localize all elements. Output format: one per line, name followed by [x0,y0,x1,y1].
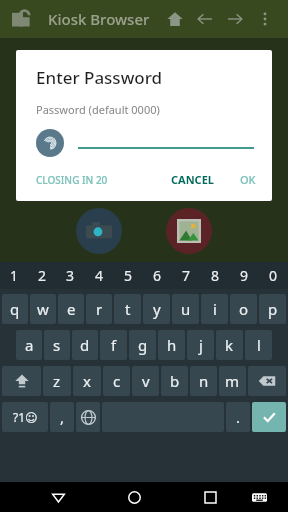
staticText: o [239,299,249,319]
button[interactable]: h [158,330,185,360]
staticText: 6 [153,266,162,285]
staticText: l [257,335,261,355]
button[interactable]: o [230,294,257,324]
button[interactable]: Forward [220,4,250,34]
staticText: 8 [211,266,220,285]
button[interactable]: 2 [28,262,56,289]
button[interactable]: Home [160,4,190,34]
staticText: 9 [240,266,249,285]
button[interactable]: q [2,294,28,324]
button[interactable]: 5 [114,262,143,289]
staticText: k [225,335,234,355]
button[interactable]: 7 [172,262,201,289]
button[interactable]: . [226,402,250,432]
staticText: y [153,299,161,319]
button[interactable]: Shift [2,366,41,396]
button[interactable]: s [44,330,70,360]
button[interactable]: , [50,402,74,432]
staticText: h [167,335,177,355]
button[interactable]: t [114,294,141,324]
staticText: t [125,299,131,319]
button[interactable]: 9 [230,262,259,289]
staticText: j [199,335,203,355]
button[interactable]: e [58,294,84,324]
button[interactable]: Kiosk lock [8,4,38,34]
staticText: d [80,335,90,355]
button[interactable]: r [86,294,112,324]
button[interactable]: n [190,366,217,396]
button[interactable]: Keyboard [244,482,274,512]
button[interactable]: b [161,366,188,396]
staticText: v [142,371,150,391]
button[interactable]: c [103,366,130,396]
button[interactable]: d [72,330,98,360]
staticText: Password (default 0000) [36,102,160,117]
button[interactable]: m [219,366,246,396]
staticText: z [53,371,61,391]
staticText: q [10,299,20,319]
button[interactable]: Recents [195,482,225,512]
staticText: b [170,371,180,391]
button[interactable]: j [187,330,214,360]
button[interactable]: Language [76,402,100,432]
staticText: 1 [10,266,19,285]
button[interactable]: g [129,330,156,360]
staticText: w [37,299,49,319]
staticText: . [236,407,241,427]
button[interactable]: 8 [201,262,230,289]
button[interactable]: Back [43,482,73,512]
button[interactable]: 6 [143,262,172,289]
staticText: r [96,299,103,319]
button[interactable]: l [245,330,272,360]
button[interactable]: Home [119,482,149,512]
button[interactable]: CLOSING IN 20 [36,173,108,187]
button[interactable]: CANCEL [171,172,214,187]
staticText: x [83,371,91,391]
staticText: 0 [269,266,278,285]
staticText: f [111,335,117,355]
button[interactable]: More options [250,4,280,34]
staticText: g [138,335,148,355]
staticText: 4 [95,266,104,285]
staticText: n [199,371,209,391]
staticText: , [60,407,65,427]
button[interactable]: u [172,294,199,324]
staticText: u [181,299,191,319]
button[interactable]: v [132,366,159,396]
button[interactable]: 0 [259,262,288,289]
button[interactable]: i [201,294,228,324]
button[interactable]: Symbols [2,402,48,432]
button[interactable]: 4 [85,262,114,289]
staticText: p [268,299,278,319]
button[interactable]: 1 [0,262,28,289]
button[interactable]: p [259,294,286,324]
button[interactable]: Backspace [248,366,286,396]
button[interactable]: OK [240,172,256,187]
staticText: Kiosk Browser [48,9,150,29]
staticText: Enter Password [36,66,163,89]
staticText: a [25,335,34,355]
staticText: 2 [38,266,47,285]
button[interactable]: f [100,330,127,360]
button[interactable]: x [73,366,101,396]
button[interactable]: Fingerprint [36,129,64,157]
button[interactable]: App icon [166,208,212,254]
button[interactable]: k [216,330,243,360]
button[interactable]: App icon [76,208,122,254]
staticText: m [225,371,240,391]
staticText: c [113,371,121,391]
button[interactable]: 3 [56,262,85,289]
staticText: s [53,335,61,355]
button[interactable]: a [16,330,42,360]
button[interactable]: Enter [252,402,286,432]
staticText: e [67,299,76,319]
staticText: 3 [66,266,75,285]
staticText: ?1☺ [13,409,38,425]
button[interactable]: y [143,294,170,324]
button[interactable]: w [30,294,56,324]
button[interactable]: Back [190,4,220,34]
staticText: 5 [124,266,133,285]
button[interactable]: z [43,366,71,396]
staticText: i [213,299,217,319]
